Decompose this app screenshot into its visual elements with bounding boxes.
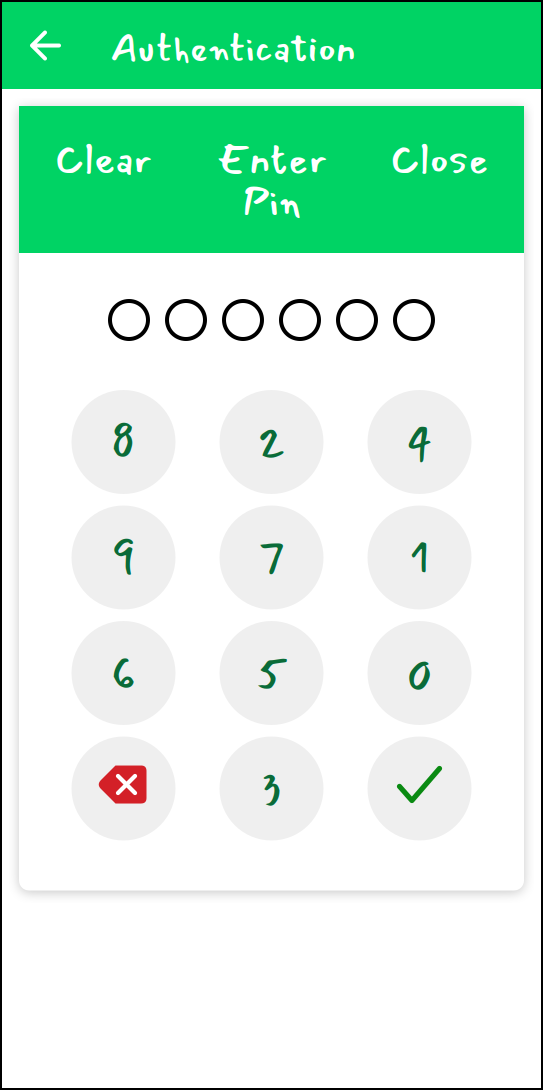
button[interactable]: Back bbox=[2, 2, 75, 89]
staticText: 7 bbox=[257, 522, 285, 593]
button[interactable]: Enter bbox=[187, 139, 356, 223]
button[interactable]: 5 bbox=[219, 621, 323, 725]
button[interactable]: Delete bbox=[71, 736, 175, 840]
staticText: 8 bbox=[111, 406, 136, 478]
button[interactable]: 4 bbox=[367, 390, 471, 494]
button[interactable]: Confirm bbox=[367, 736, 471, 840]
button[interactable]: 3 bbox=[219, 736, 323, 840]
staticText: 9 bbox=[111, 522, 135, 593]
button[interactable]: 1 bbox=[367, 505, 471, 609]
staticText: 2 bbox=[257, 406, 285, 478]
button[interactable]: 2 bbox=[219, 390, 323, 494]
button[interactable]: 9 bbox=[71, 505, 175, 609]
staticText: 5 bbox=[255, 637, 287, 709]
button[interactable]: 8 bbox=[71, 390, 175, 494]
button[interactable]: 0 bbox=[367, 621, 471, 725]
staticText: 1 bbox=[409, 522, 430, 593]
staticText: Pin bbox=[242, 170, 300, 233]
staticText: Close bbox=[391, 128, 489, 191]
staticText: 3 bbox=[261, 753, 282, 824]
staticText: Clear bbox=[55, 128, 151, 191]
button[interactable]: Clear bbox=[19, 139, 187, 181]
staticText: 4 bbox=[406, 406, 433, 478]
button[interactable]: 7 bbox=[219, 505, 323, 609]
staticText: Enter bbox=[216, 128, 326, 191]
staticText: Authentication bbox=[110, 18, 356, 78]
button[interactable]: 6 bbox=[71, 621, 175, 725]
staticText: 6 bbox=[111, 637, 136, 709]
staticText: 0 bbox=[406, 637, 432, 709]
button[interactable]: Close bbox=[356, 139, 524, 181]
